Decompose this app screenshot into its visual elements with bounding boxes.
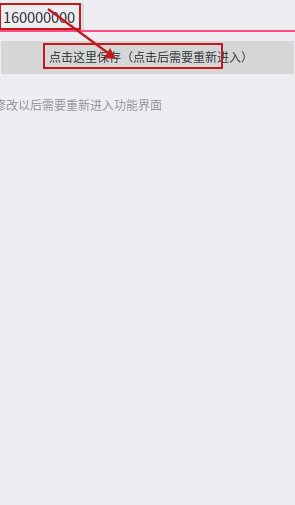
button[interactable]: 点击这里保存（点击后需要重新进入） [1,41,294,74]
staticText: 160000000 [3,6,75,27]
staticText: 修改以后需要重新进入功能界面 [0,96,162,113]
button[interactable]: 160000000 [0,4,83,29]
staticText: 点击这里保存（点击后需要重新进入） [49,48,253,65]
